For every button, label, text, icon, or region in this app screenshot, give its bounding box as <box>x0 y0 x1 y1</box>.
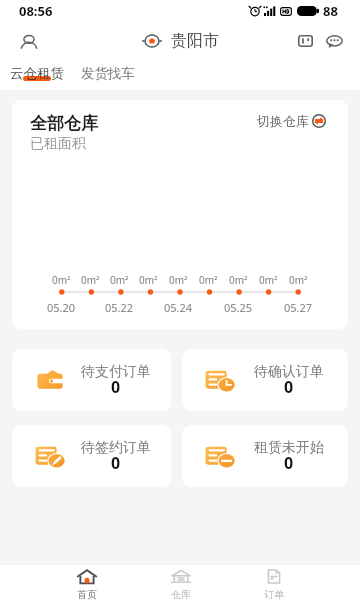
button[interactable]: 贵阳市 <box>138 28 223 54</box>
staticText: 0m² <box>52 273 71 287</box>
staticText: 05.27 <box>284 300 313 315</box>
button[interactable]: 待确认订单 <box>182 349 348 411</box>
button[interactable]: 发货找车 <box>81 65 135 82</box>
button[interactable]: 切换仓库 <box>257 113 326 129</box>
staticText: 88 <box>323 2 338 20</box>
staticText: 05.24 <box>164 300 193 315</box>
staticText: 贵阳市 <box>171 31 219 51</box>
staticText: 0m² <box>199 273 218 287</box>
staticText: 0m² <box>139 273 158 287</box>
staticText: 云仓租赁 <box>10 65 64 82</box>
staticText: 05.25 <box>224 300 253 315</box>
staticText: 0 <box>111 452 121 474</box>
staticText: 0m² <box>259 273 278 287</box>
staticText: 仓库 <box>171 588 191 600</box>
button[interactable]: 订单 <box>227 569 320 600</box>
staticText: 0m² <box>110 273 129 287</box>
staticText: 0m² <box>289 273 308 287</box>
staticText: 待支付订单 <box>81 363 151 381</box>
staticText: 首页 <box>77 588 97 600</box>
button[interactable]: 仓库 <box>134 569 227 600</box>
button[interactable]: Mini program <box>292 28 318 54</box>
staticText: 05.22 <box>105 300 134 315</box>
button[interactable]: 首页 <box>40 569 134 600</box>
staticText: 待签约订单 <box>81 439 151 457</box>
staticText: 0 <box>111 376 121 398</box>
staticText: 0m² <box>169 273 188 287</box>
staticText: 切换仓库 <box>257 113 309 129</box>
staticText: 发货找车 <box>81 65 135 82</box>
staticText: 0m² <box>229 273 248 287</box>
staticText: 0 <box>284 452 294 474</box>
staticText: 08:56 <box>19 2 53 20</box>
staticText: 0m² <box>81 273 100 287</box>
button[interactable]: Profile <box>13 25 45 57</box>
staticText: 租赁未开始 <box>254 439 324 457</box>
staticText: 订单 <box>264 588 284 600</box>
staticText: 05.20 <box>47 300 76 315</box>
button[interactable]: 租赁未开始 <box>182 425 348 487</box>
staticText: 待确认订单 <box>254 363 324 381</box>
button[interactable]: 待支付订单 <box>12 349 171 411</box>
button[interactable]: Chat <box>321 28 347 54</box>
staticText: 0 <box>284 376 294 398</box>
staticText: 全部仓库 <box>30 113 98 134</box>
button[interactable]: 待签约订单 <box>12 425 171 487</box>
staticText: 已租面积 <box>30 135 86 153</box>
button[interactable]: 云仓租赁 <box>10 65 64 82</box>
